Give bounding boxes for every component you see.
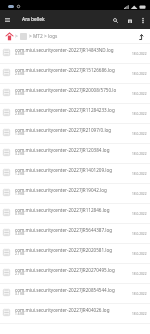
staticText: com.miui.securitycenter-20227JR19042.log <box>15 187 119 193</box>
staticText: 18.0.2022 <box>132 92 147 96</box>
button[interactable]: Sort <box>135 31 147 43</box>
staticText: 1.6 KB <box>15 312 25 316</box>
staticText: 18.0.2022 <box>132 172 147 176</box>
staticText: 18.0.2022 <box>132 72 147 76</box>
staticText: 18.0.2022 <box>132 272 147 276</box>
staticText: Ara bellek <box>22 16 45 23</box>
button[interactable]: com.miui.securitycenter-20227JR5644387.l… <box>0 224 150 244</box>
staticText: 18.0.2022 <box>132 252 147 256</box>
staticText: com.miui.securitycenter-20227JR2020581.l… <box>15 247 119 253</box>
staticText: 3.1 KB <box>15 292 25 296</box>
staticText: com.miui.securitycenter-20227JR112846.lo… <box>15 207 119 213</box>
staticText: 18.0.2022 <box>132 112 147 116</box>
staticText: 1.0 KB <box>15 132 25 136</box>
staticText: 0.9 KB <box>15 212 25 216</box>
staticText: 18.0.2022 <box>132 192 147 196</box>
staticText: > MT2 > logs <box>29 33 58 40</box>
button[interactable]: Search <box>109 15 122 26</box>
button[interactable]: com.miui.securitycenter-20227JR20008/575… <box>0 84 150 104</box>
staticText: 18.0.2022 <box>132 212 147 216</box>
staticText: com.miui.securitycenter-20227JR15126686.… <box>15 67 119 73</box>
staticText: 4.5 KB <box>15 52 25 56</box>
staticText: 18.0.2022 <box>132 152 147 156</box>
staticText: com.miui.securitycenter-20227JR21097/0.l… <box>15 127 119 133</box>
staticText: 18.0.2022 <box>132 292 147 296</box>
staticText: 1.2 KB <box>15 172 25 176</box>
button[interactable]: com.miui.securitycenter-20227JR1401209.l… <box>0 164 150 184</box>
button[interactable]: com.miui.securitycenter-20227JR15126686.… <box>0 64 150 84</box>
button[interactable]: com.miui.securitycenter-20227JR19042.log <box>0 184 150 204</box>
button[interactable]: com.miui.securitycenter-20227JR2020581.l… <box>0 244 150 264</box>
staticText: 2.7 KB <box>15 272 25 276</box>
button[interactable]: com.miui.securitycenter-20227JR14843ND.l… <box>0 44 150 64</box>
button[interactable]: com.miui.securitycenter-20227JR21097/0.l… <box>0 124 150 144</box>
staticText: com.miui.securitycenter-20227JR5644387.l… <box>15 227 119 233</box>
staticText: 2.1 KB <box>15 252 25 256</box>
button[interactable]: com.miui.securitycenter-20227JR120384.lo… <box>0 144 150 164</box>
button[interactable]: View mode <box>124 15 136 26</box>
staticText: com.miui.securitycenter-20227JR20854544.… <box>15 287 119 293</box>
button[interactable]: com.miui.securitycenter-20227JR112846.lo… <box>0 204 150 224</box>
staticText: com.miui.securitycenter-20227JR120384.lo… <box>15 147 119 153</box>
staticText: 1.9 KB <box>15 192 25 196</box>
staticText: com.miui.securitycenter-20227JR1401209.l… <box>15 167 119 173</box>
button[interactable]: More options <box>137 15 149 26</box>
button[interactable]: Menu <box>1 15 14 25</box>
button[interactable]: Home <box>3 30 15 42</box>
staticText: 3.4 KB <box>15 232 25 236</box>
staticText: 18.0.2022 <box>132 132 147 136</box>
button[interactable]: com.miui.securitycenter-20227JR11284233.… <box>0 104 150 124</box>
staticText: com.miui.securitycenter-20227JR20008/575… <box>15 87 119 93</box>
staticText: 18.0.2022 <box>132 312 147 316</box>
staticText: 0.6 KB <box>15 92 25 96</box>
staticText: 2.8 KB <box>15 112 25 116</box>
staticText: 3.2 KB <box>15 152 25 156</box>
button[interactable]: com.miui.securitycenter-20227JR20854544.… <box>0 284 150 304</box>
staticText: com.miui.securitycenter-20227JR11284233.… <box>15 107 119 113</box>
staticText: 2.6 KB <box>15 72 25 76</box>
staticText: com.miui.securitycenter-20227JR14843ND.l… <box>15 47 119 53</box>
staticText: com.miui.securitycenter-20227JR20270495.… <box>15 267 119 273</box>
staticText: 18.0.2022 <box>132 52 147 56</box>
staticText: 18.0.2022 <box>132 232 147 236</box>
button[interactable]: com.miui.securitycenter-20227JR404026.lo… <box>0 304 150 324</box>
button[interactable]: com.miui.securitycenter-20227JR20270495.… <box>0 264 150 284</box>
staticText: > <box>15 33 18 40</box>
staticText: com.miui.securitycenter-20227JR404026.lo… <box>15 307 119 313</box>
